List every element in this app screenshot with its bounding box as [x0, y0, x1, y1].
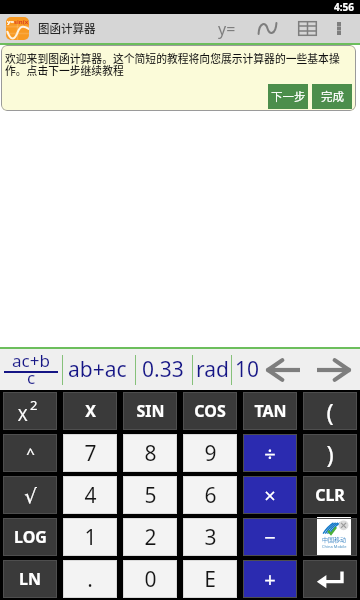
- button[interactable]: Advertisement: [303, 518, 357, 556]
- button[interactable]: Next: [305, 349, 360, 390]
- button[interactable]: App icon: [6, 17, 29, 40]
- staticText: 0: [144, 565, 157, 594]
- button[interactable]: 3: [183, 518, 237, 556]
- button[interactable]: X: [63, 392, 117, 430]
- staticText: China Mobile: [322, 544, 347, 549]
- button[interactable]: X: [3, 392, 57, 430]
- staticText: ^: [26, 443, 35, 463]
- staticText: ac+b: [12, 349, 50, 372]
- staticText: 欢迎来到图函计算器。这个简短的教程将向您展示计算器的一些基本操作。点击下一步继续…: [5, 50, 355, 78]
- button[interactable]: TAN: [243, 392, 297, 430]
- staticText: ×: [264, 482, 276, 509]
- staticText: rad: [196, 355, 229, 384]
- staticText: ÷: [264, 440, 276, 467]
- staticText: 8: [144, 439, 157, 468]
- button[interactable]: √: [3, 476, 57, 514]
- button[interactable]: 1: [63, 518, 117, 556]
- staticText: 0.33: [142, 355, 184, 384]
- staticText: X: [85, 400, 96, 422]
- button[interactable]: SIN: [123, 392, 177, 430]
- staticText: 3: [204, 523, 217, 552]
- staticText: 4: [84, 481, 97, 510]
- button[interactable]: LN: [3, 560, 57, 598]
- staticText: ab+ac: [68, 355, 127, 384]
- staticText: 7: [84, 439, 97, 468]
- button[interactable]: 下一步: [268, 84, 308, 109]
- staticText: 下一步: [271, 88, 306, 105]
- button[interactable]: Equation: [207, 14, 247, 43]
- staticText: (: [326, 395, 334, 428]
- button[interactable]: ÷: [243, 434, 297, 472]
- staticText: SIN: [136, 400, 165, 422]
- button[interactable]: ×: [243, 476, 297, 514]
- button[interactable]: 4: [63, 476, 117, 514]
- staticText: E: [204, 565, 216, 594]
- staticText: sin(x): [14, 18, 29, 26]
- staticText: 10: [235, 355, 260, 384]
- button[interactable]: +: [243, 560, 297, 598]
- button[interactable]: 9: [183, 434, 237, 472]
- staticText: −: [264, 524, 276, 551]
- staticText: 中国移动: [322, 535, 347, 544]
- staticText: COS: [194, 400, 226, 422]
- button[interactable]: ^: [3, 434, 57, 472]
- staticText: TAN: [254, 400, 287, 422]
- staticText: 9: [204, 439, 217, 468]
- button[interactable]: CLR: [303, 476, 357, 514]
- button[interactable]: ): [303, 434, 357, 472]
- staticText: CLR: [315, 484, 345, 506]
- staticText: 2: [144, 523, 157, 552]
- staticText: 1: [84, 523, 97, 552]
- button[interactable]: 5: [123, 476, 177, 514]
- staticText: ): [326, 437, 334, 470]
- button[interactable]: .: [63, 560, 117, 598]
- button[interactable]: More options: [327, 14, 351, 43]
- button[interactable]: −: [243, 518, 297, 556]
- staticText: y=: [218, 18, 236, 40]
- staticText: 6: [204, 481, 217, 510]
- button[interactable]: 8: [123, 434, 177, 472]
- button[interactable]: E: [183, 560, 237, 598]
- button[interactable]: Graph: [247, 14, 287, 43]
- staticText: 4:56: [334, 0, 354, 14]
- staticText: LOG: [14, 526, 47, 548]
- button[interactable]: [303, 560, 357, 598]
- staticText: √: [24, 484, 37, 507]
- button[interactable]: 完成: [312, 84, 352, 109]
- button[interactable]: (: [303, 392, 357, 430]
- staticText: 图函计算器: [38, 20, 96, 37]
- staticText: 5: [144, 481, 157, 510]
- button[interactable]: 2: [123, 518, 177, 556]
- button[interactable]: Table: [287, 14, 327, 43]
- button[interactable]: LOG: [3, 518, 57, 556]
- button[interactable]: 0: [123, 560, 177, 598]
- button[interactable]: Advertisement: [317, 517, 351, 555]
- button[interactable]: Previous: [263, 349, 305, 390]
- button[interactable]: 7: [63, 434, 117, 472]
- button[interactable]: 6: [183, 476, 237, 514]
- staticText: X: [18, 404, 28, 426]
- staticText: 2: [30, 396, 38, 414]
- staticText: +: [264, 566, 276, 593]
- button[interactable]: COS: [183, 392, 237, 430]
- staticText: y=: [7, 18, 14, 26]
- staticText: c: [27, 366, 36, 389]
- staticText: LN: [19, 568, 41, 590]
- staticText: .: [87, 565, 93, 594]
- staticText: 完成: [321, 88, 344, 105]
